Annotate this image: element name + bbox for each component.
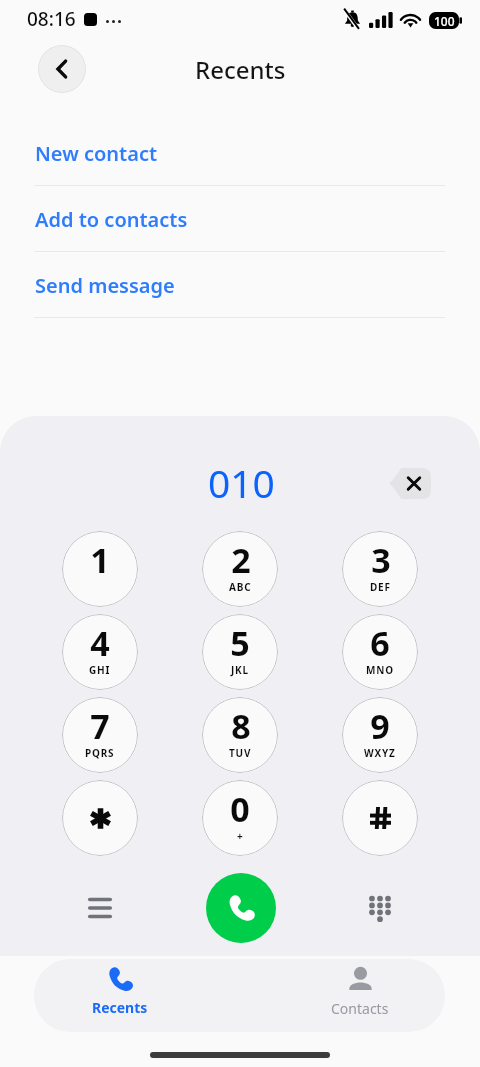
staticText: PQRS	[85, 746, 115, 760]
button[interactable]: Add to contacts	[0, 186, 480, 252]
staticText: 8	[231, 703, 251, 749]
button[interactable]: 9	[342, 697, 418, 773]
button[interactable]: Call log	[73, 881, 127, 935]
staticText: GHI	[89, 663, 111, 677]
button[interactable]: Send message	[0, 252, 480, 318]
button[interactable]: Back	[38, 45, 86, 93]
staticText: MNO	[366, 663, 394, 677]
button[interactable]: Recents	[0, 956, 240, 1034]
staticText: 5	[230, 620, 250, 666]
staticText: 010	[208, 456, 275, 509]
button[interactable]: Keypad	[353, 881, 407, 935]
button[interactable]: 0	[202, 780, 278, 856]
button[interactable]: 2	[202, 531, 278, 607]
staticText: 9	[370, 703, 390, 749]
staticText: Add to contacts	[35, 206, 188, 233]
staticText: WXYZ	[364, 746, 396, 760]
staticText: 7	[90, 703, 110, 749]
staticText: 0	[230, 786, 250, 832]
button[interactable]: Backspace	[380, 460, 441, 507]
button[interactable]: 4	[62, 614, 138, 690]
staticText: Contacts	[331, 999, 389, 1018]
button[interactable]: 3	[342, 531, 418, 607]
button[interactable]: New contact	[0, 120, 480, 186]
staticText: DEF	[370, 580, 391, 594]
button[interactable]: Contacts	[240, 956, 480, 1034]
staticText: 6	[370, 620, 390, 666]
staticText: 3	[371, 537, 391, 583]
button[interactable]: Call	[206, 873, 276, 943]
staticText: +	[237, 829, 244, 843]
staticText: 4	[90, 620, 110, 666]
staticText: 08:16	[27, 6, 76, 32]
staticText: Recents	[92, 998, 148, 1017]
staticText: 1	[90, 537, 110, 583]
button[interactable]: 8	[202, 697, 278, 773]
staticText: 2	[231, 537, 251, 583]
staticText: ABC	[229, 580, 252, 594]
button[interactable]: 7	[62, 697, 138, 773]
staticText: New contact	[35, 140, 158, 167]
staticText: Recents	[195, 53, 286, 86]
staticText: TUV	[229, 746, 252, 760]
button[interactable]: 1	[62, 531, 138, 607]
staticText: JKL	[231, 663, 249, 677]
staticText: 100	[434, 13, 455, 29]
button[interactable]	[62, 780, 138, 856]
button[interactable]: 5	[202, 614, 278, 690]
button[interactable]: 6	[342, 614, 418, 690]
staticText: Send message	[35, 272, 175, 299]
button[interactable]	[342, 780, 418, 856]
